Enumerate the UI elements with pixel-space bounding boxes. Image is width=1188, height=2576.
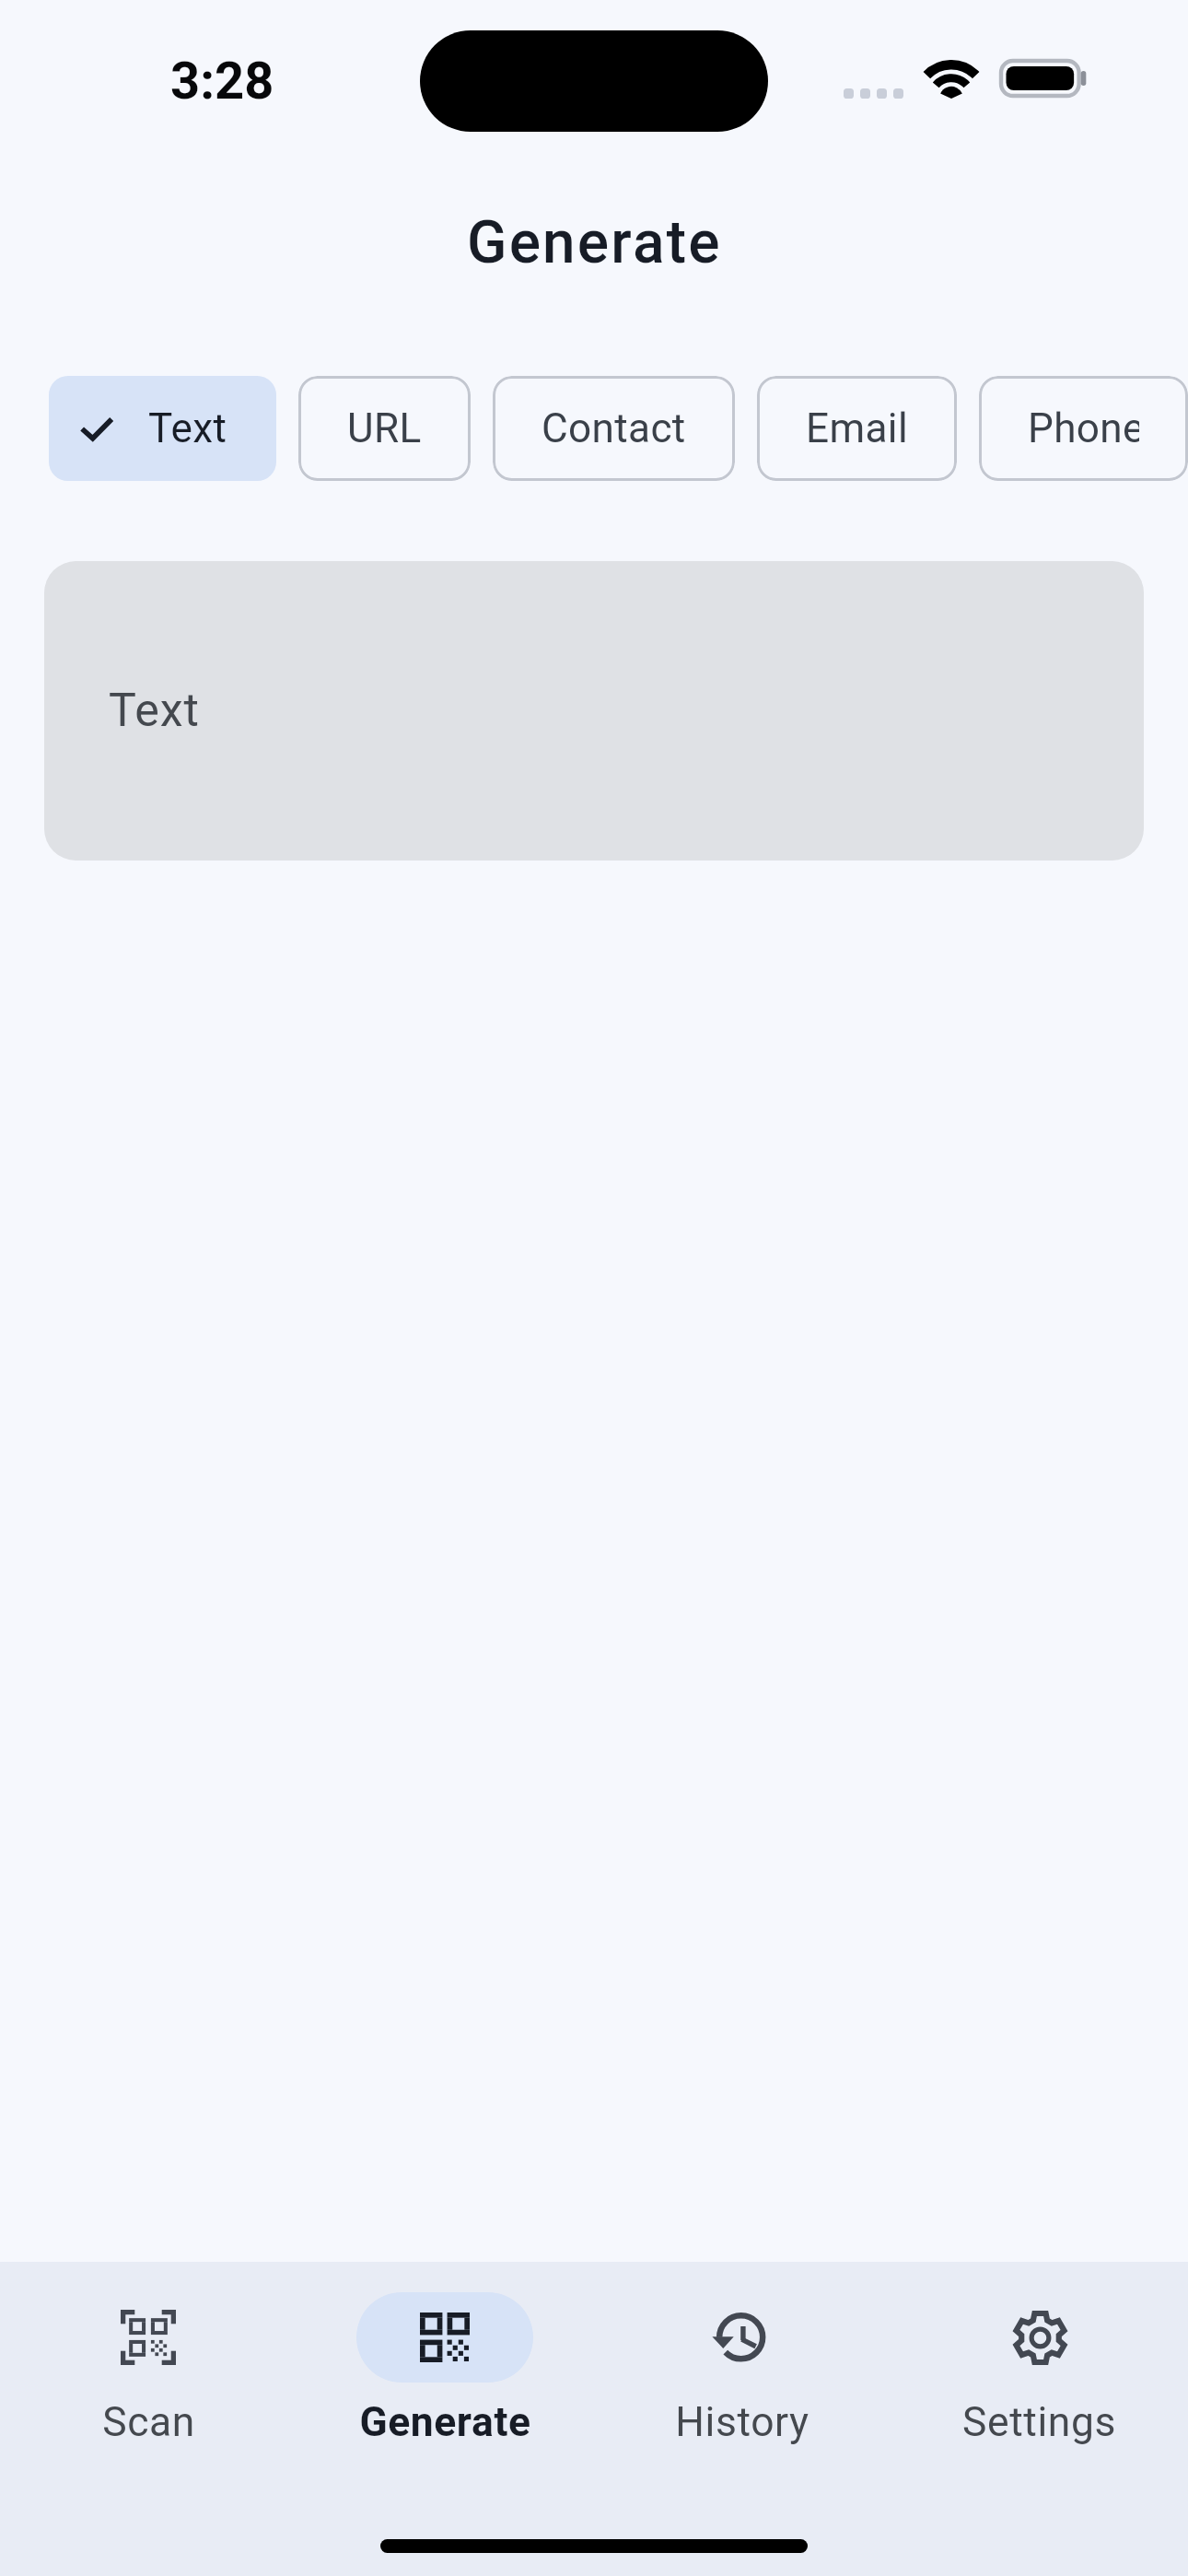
button[interactable]: Contact [493,376,735,481]
other: History [712,2307,773,2368]
staticText: URL [347,404,422,452]
staticText: Text [109,684,200,738]
button[interactable]: Email [757,376,957,481]
staticText: Text [148,404,227,452]
button[interactable]: Settings [891,2292,1188,2446]
staticText: 3:28 [170,51,274,111]
staticText: Settings [962,2398,1116,2446]
button[interactable]: Scan [0,2292,297,2446]
staticText: Email [806,404,908,452]
staticText: Scan [102,2398,195,2446]
button[interactable]: Text [49,376,276,481]
staticText: Phone [1028,404,1139,452]
other: Scan [121,2310,176,2365]
staticText: Contact [542,404,686,452]
staticText: Generate [359,2398,531,2446]
other: Generate [420,2313,470,2362]
button[interactable]: Phone [979,376,1188,481]
other: Settings [1011,2309,1069,2367]
button[interactable]: History [593,2292,891,2446]
staticText: History [675,2398,809,2446]
button[interactable]: URL [298,376,471,481]
button[interactable]: Generate [297,2292,593,2446]
staticText: Generate [467,208,722,277]
button[interactable]: Text [44,561,1144,861]
